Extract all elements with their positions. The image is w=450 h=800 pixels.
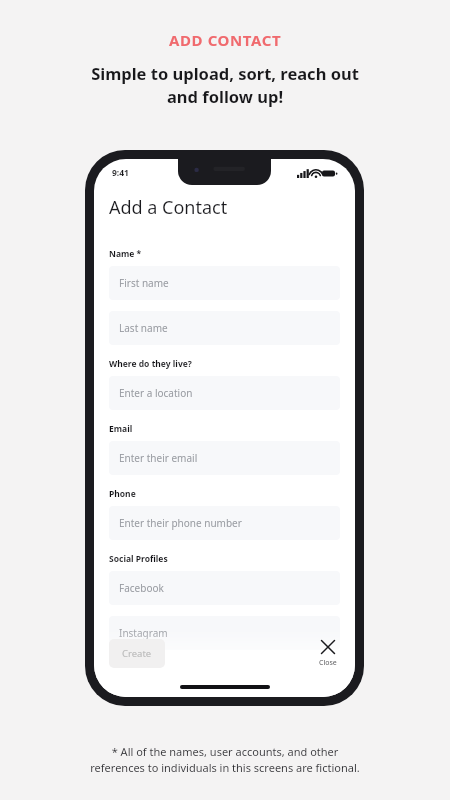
button[interactable]: Close (316, 636, 340, 671)
staticText: Simple to upload, sort, reach out and fo… (91, 62, 359, 108)
staticText: Enter their phone number (119, 516, 242, 530)
staticText: Last name (119, 321, 168, 335)
button[interactable]: Facebook (109, 571, 340, 605)
button[interactable]: Enter their phone number (109, 506, 340, 540)
staticText: ADD CONTACT (169, 30, 282, 50)
staticText: Phone (109, 488, 136, 500)
staticText: Social Profiles (109, 553, 168, 565)
staticText: Enter a location (119, 386, 193, 400)
staticText: First name (119, 276, 169, 290)
staticText: Enter their email (119, 451, 198, 465)
button[interactable]: Create (109, 639, 165, 668)
staticText: * All of the names, user accounts, and o… (90, 744, 360, 776)
staticText: Instagram (119, 626, 168, 640)
staticText: Facebook (119, 581, 164, 595)
staticText: Where do they live? (109, 358, 192, 370)
button[interactable]: Enter a location (109, 376, 340, 410)
staticText: Email (109, 423, 133, 435)
staticText: Close (319, 658, 337, 668)
staticText: Add a Contact (109, 195, 228, 220)
button[interactable]: Enter their email (109, 441, 340, 475)
button[interactable]: Instagram (109, 616, 340, 650)
staticText: Name * (109, 248, 142, 260)
staticText: 9:41 (112, 167, 129, 179)
button[interactable]: First name (109, 266, 340, 300)
button[interactable]: Last name (109, 311, 340, 345)
staticText: Create (122, 647, 152, 660)
